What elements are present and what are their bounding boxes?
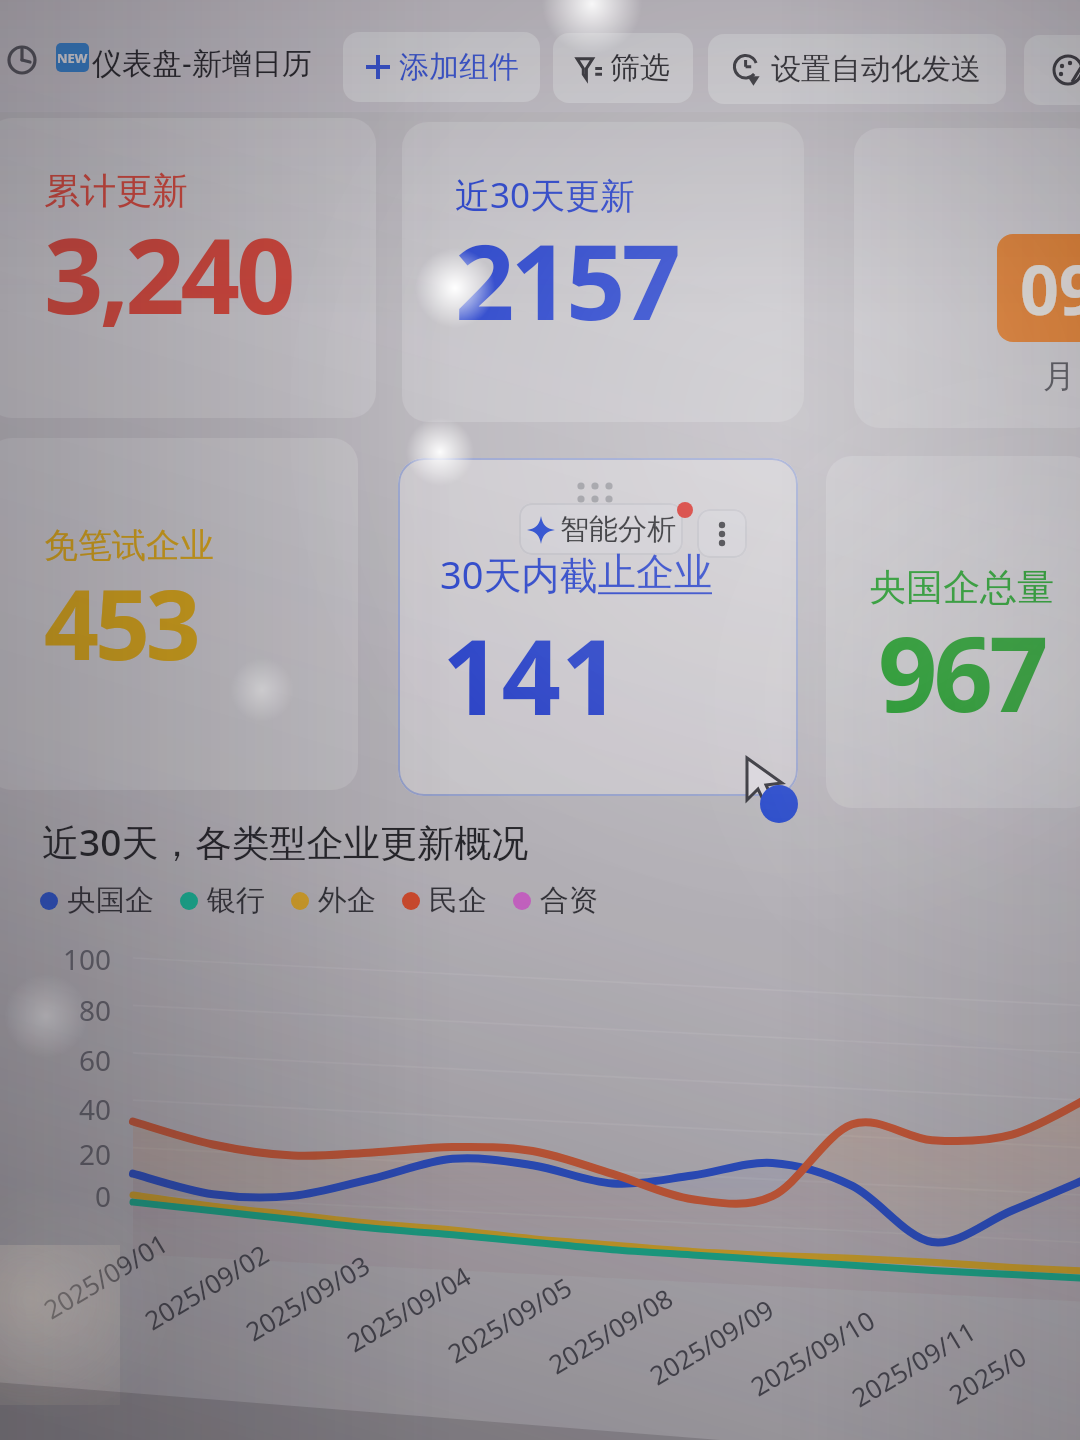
staticText: 967 bbox=[878, 601, 1045, 743]
staticText: 80 bbox=[79, 991, 112, 1027]
staticText: 止企业 bbox=[598, 548, 712, 596]
button[interactable] bbox=[398, 458, 798, 796]
staticText: 外企 bbox=[318, 882, 376, 919]
staticText: 2025/09/09 bbox=[643, 1291, 780, 1392]
staticText: 累计更新 bbox=[44, 168, 188, 213]
button[interactable]: History bbox=[0, 38, 44, 82]
button[interactable]: 免笔试企业 bbox=[0, 438, 358, 790]
staticText: 合资 bbox=[540, 882, 598, 919]
staticText: 2025/09/10 bbox=[744, 1302, 881, 1403]
staticText: 20 bbox=[79, 1135, 112, 1171]
staticText: 央国企 bbox=[67, 882, 154, 919]
staticText: 100 bbox=[63, 940, 112, 976]
staticText: 2025/09/11 bbox=[845, 1313, 982, 1414]
staticText: 2025/09/08 bbox=[542, 1280, 679, 1381]
staticText: 月 bbox=[1043, 356, 1075, 396]
button[interactable]: 设置自动化发送 bbox=[708, 34, 1006, 104]
button[interactable]: 筛选 bbox=[553, 33, 693, 103]
button[interactable]: 添加组件 bbox=[343, 32, 540, 102]
button[interactable]: 仪表盘-新增日历 bbox=[92, 42, 312, 83]
staticText: 60 bbox=[79, 1041, 112, 1077]
staticText: 3,240 bbox=[44, 203, 292, 345]
staticText: 近30天，各类型企业更新概况 bbox=[42, 816, 529, 867]
staticText: 2157 bbox=[455, 209, 677, 351]
staticText: 近30天更新 bbox=[455, 171, 636, 219]
button[interactable]: More options bbox=[697, 509, 747, 558]
staticText: 2025/09/02 bbox=[138, 1236, 275, 1337]
staticText: 添加组件 bbox=[399, 48, 519, 86]
staticText: 央国企总量 bbox=[869, 564, 1054, 611]
button[interactable]: 央国企总量 bbox=[826, 456, 1080, 808]
staticText: 09 bbox=[1020, 242, 1080, 335]
button[interactable]: Theme bbox=[1024, 35, 1080, 105]
staticText: 智能分析 bbox=[560, 511, 676, 548]
staticText: 2025/09/03 bbox=[239, 1247, 376, 1348]
staticText: 2025/09/05 bbox=[441, 1269, 578, 1370]
staticText: 30天内截 bbox=[440, 548, 598, 600]
staticText: 0 bbox=[95, 1177, 112, 1213]
button[interactable]: 累计更新 bbox=[0, 118, 376, 418]
staticText: 银行 bbox=[207, 882, 265, 919]
staticText: 2025/09/01 bbox=[37, 1225, 174, 1326]
staticText: 2025/09/04 bbox=[340, 1258, 477, 1359]
staticText: 453 bbox=[44, 557, 197, 688]
staticText: 民企 bbox=[429, 882, 487, 919]
staticText: NEW bbox=[57, 49, 88, 67]
staticText: 筛选 bbox=[610, 49, 670, 87]
button[interactable]: 智能分析 bbox=[519, 503, 683, 555]
button[interactable]: 09 bbox=[854, 128, 1080, 428]
staticText: 141 bbox=[442, 604, 621, 746]
staticText: 2025/0 bbox=[942, 1338, 1033, 1411]
button[interactable]: 近30天更新 bbox=[402, 122, 804, 422]
staticText: 40 bbox=[79, 1090, 112, 1126]
staticText: 设置自动化发送 bbox=[771, 50, 981, 88]
staticText: 免笔试企业 bbox=[44, 524, 214, 567]
other: Theme bbox=[1054, 54, 1080, 86]
